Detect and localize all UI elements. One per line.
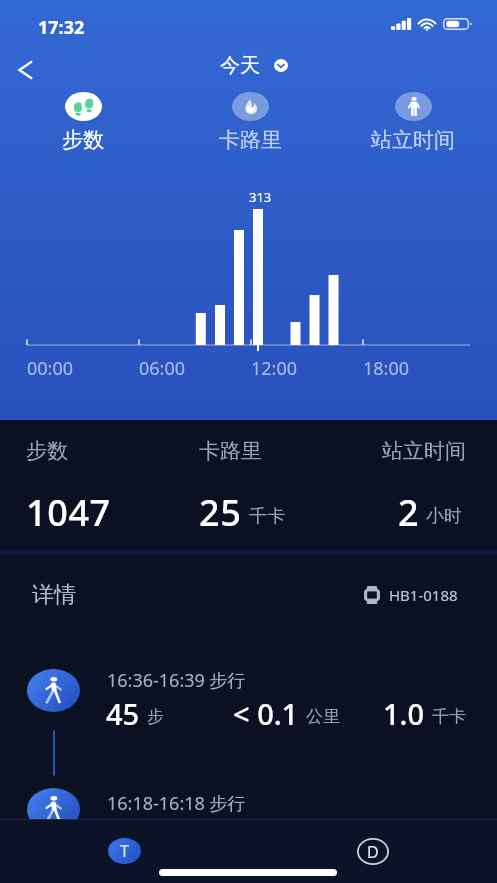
staticText: 站立时间 (382, 438, 466, 464)
staticText: T (120, 840, 129, 862)
staticText: 千卡 (432, 706, 466, 727)
button[interactable]: HB1-0188 (364, 585, 458, 605)
button[interactable]: 站立时间 (363, 92, 463, 153)
staticText: 详情 (32, 581, 76, 609)
staticText: 卡路里 (199, 438, 262, 464)
staticText: 站立时间 (371, 127, 455, 153)
button[interactable]: Walking activity (27, 788, 80, 819)
staticText: 卡路里 (219, 127, 282, 153)
staticText: 16:36-16:39 步行 (107, 668, 246, 693)
button[interactable]: 今天 (220, 53, 288, 78)
staticText: 2 (398, 488, 419, 537)
button[interactable]: Walking activity (27, 669, 80, 712)
staticText: 25 (199, 488, 242, 537)
staticText: 00:00 (27, 356, 74, 381)
staticText: 17:32 (38, 15, 85, 40)
staticText: D (367, 841, 379, 863)
staticText: 1.0 (383, 694, 425, 733)
staticText: 公里 (306, 706, 340, 727)
staticText: HB1-0188 (389, 585, 458, 605)
button[interactable]: Tencent (108, 838, 141, 864)
staticText: < 0.1 (233, 694, 299, 733)
staticText: 313 (249, 188, 272, 206)
button[interactable]: 步数 (33, 92, 133, 153)
staticText: 步 (147, 706, 164, 727)
staticText: 45 (106, 694, 140, 733)
staticText: 12:00 (251, 356, 298, 381)
button[interactable]: Back (3, 48, 47, 92)
staticText: 小时 (426, 505, 462, 528)
staticText: 1047 (26, 488, 111, 537)
staticText: 千卡 (249, 505, 285, 528)
button[interactable]: 卡路里 (200, 92, 300, 153)
staticText: 步数 (26, 438, 68, 464)
staticText: 06:00 (139, 356, 186, 381)
staticText: 今天 (220, 53, 260, 78)
staticText: 16:18-16:18 步行 (107, 791, 246, 816)
staticText: 步数 (62, 127, 104, 153)
button[interactable]: Dock (357, 838, 389, 865)
staticText: 18:00 (363, 356, 410, 381)
